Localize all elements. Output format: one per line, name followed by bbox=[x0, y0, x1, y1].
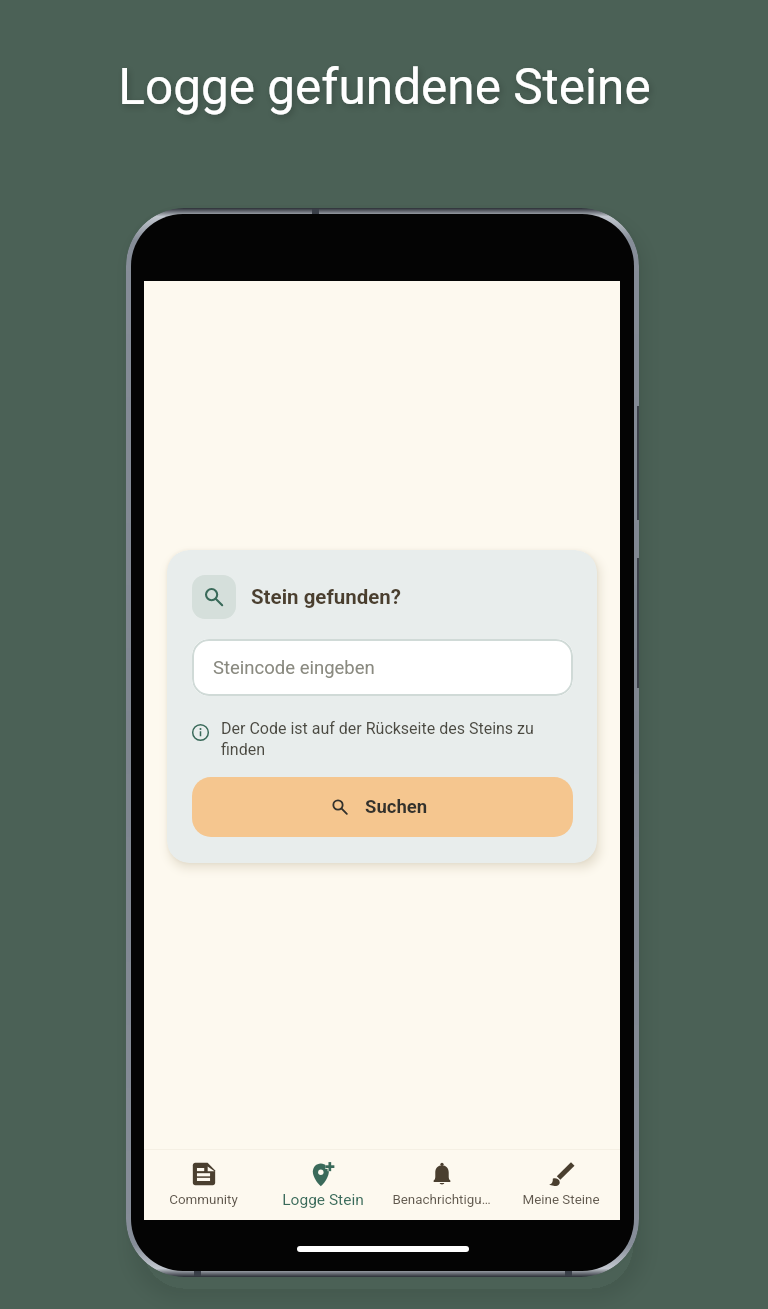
staticText: Steincode eingeben bbox=[213, 657, 375, 679]
other: Logge Stein bbox=[310, 1161, 336, 1187]
staticText: Suchen bbox=[365, 796, 428, 818]
other: Benachrichtigungen bbox=[429, 1161, 455, 1187]
staticText: Stein gefunden? bbox=[251, 585, 402, 609]
other: Search bbox=[330, 797, 350, 817]
button[interactable]: Steincode eingeben bbox=[192, 639, 573, 696]
button[interactable]: Logge Stein bbox=[263, 1149, 382, 1220]
button[interactable]: Search bbox=[192, 777, 573, 837]
staticText: Community bbox=[169, 1192, 238, 1208]
staticText: Der Code ist auf der Rückseite des Stein… bbox=[221, 719, 573, 759]
staticText: Logge gefundene Steine bbox=[118, 58, 651, 116]
staticText: Benachrichtigu… bbox=[392, 1192, 491, 1208]
other: Meine Steine bbox=[548, 1161, 574, 1187]
staticText: Meine Steine bbox=[522, 1192, 600, 1208]
button[interactable]: Benachrichtigungen bbox=[382, 1149, 501, 1220]
button[interactable]: Community bbox=[144, 1149, 263, 1220]
staticText: Logge Stein bbox=[282, 1191, 364, 1209]
other: Search bbox=[202, 585, 226, 609]
other: Community bbox=[191, 1161, 217, 1187]
button[interactable]: Meine Steine bbox=[501, 1149, 620, 1220]
